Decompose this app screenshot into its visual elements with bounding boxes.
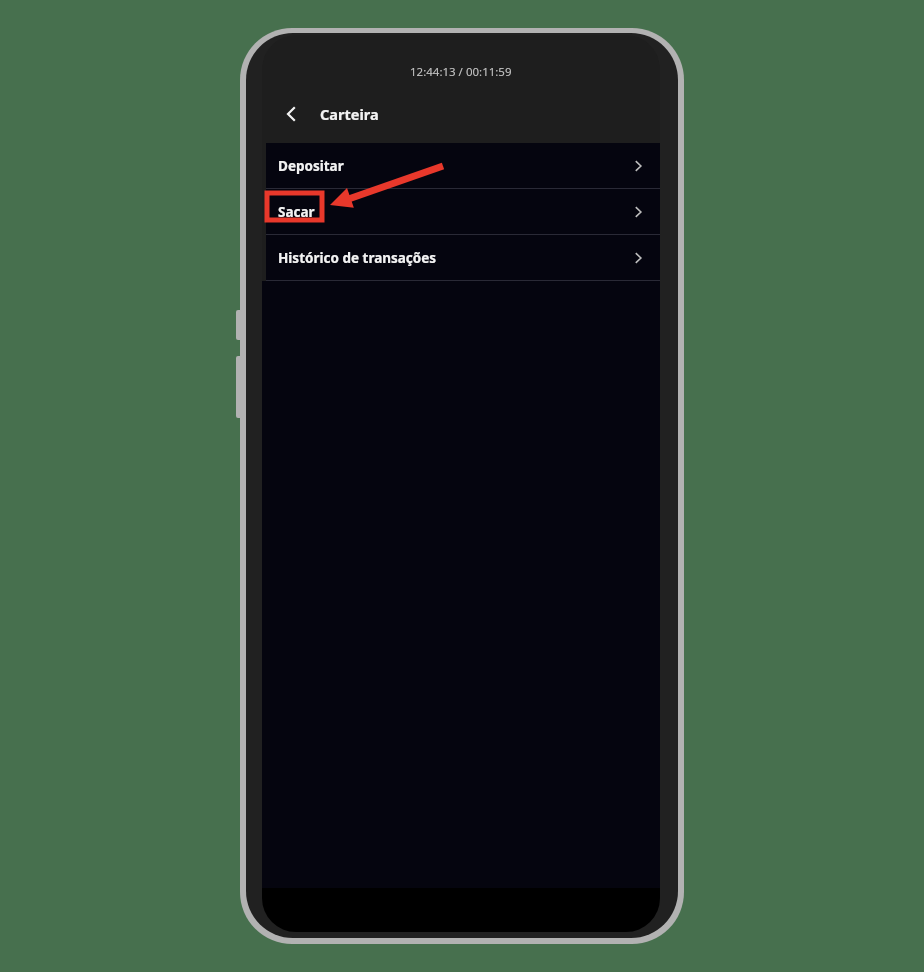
staticText: Sacar bbox=[278, 203, 315, 221]
staticText: Carteira bbox=[320, 104, 379, 124]
button[interactable]: Back bbox=[274, 96, 310, 132]
button[interactable]: Histórico de transações bbox=[266, 235, 660, 280]
button[interactable]: Depositar bbox=[266, 143, 660, 188]
staticText: Depositar bbox=[278, 157, 344, 175]
staticText: 12:44:13 / 00:11:59 bbox=[410, 64, 512, 80]
button[interactable]: Sacar bbox=[266, 189, 660, 234]
staticText: Histórico de transações bbox=[278, 249, 437, 267]
